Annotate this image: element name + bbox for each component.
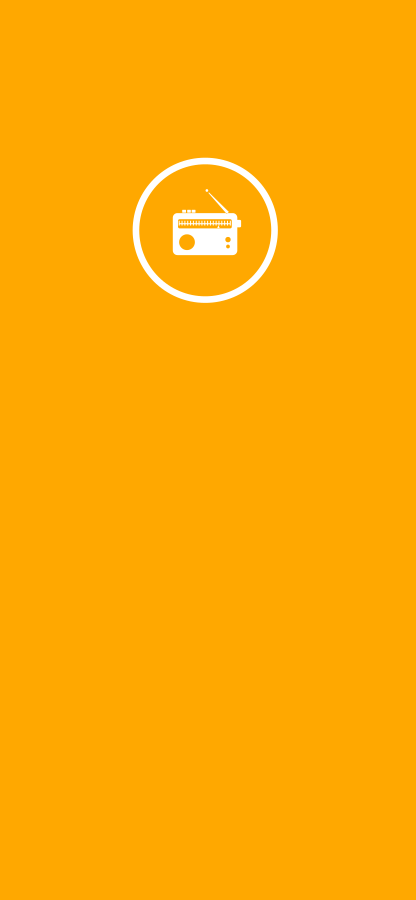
image: Radio app logo bbox=[0, 0, 416, 900]
